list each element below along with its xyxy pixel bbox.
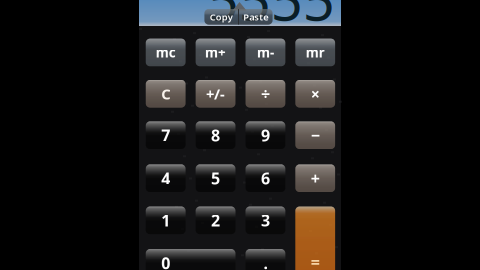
staticText: 2 [211, 210, 220, 231]
staticText: Copy [210, 11, 233, 23]
button[interactable]: 0 [146, 249, 235, 270]
button[interactable]: Equals [295, 207, 335, 270]
staticText: = [311, 251, 320, 270]
staticText: 9 [261, 125, 270, 146]
button[interactable]: − [295, 121, 335, 149]
staticText: 8 [211, 125, 220, 146]
button[interactable]: m+ [196, 39, 235, 66]
staticText: + [311, 168, 320, 189]
staticText: 5555 [207, 0, 335, 36]
button[interactable]: + [295, 164, 335, 192]
button[interactable]: mc [146, 39, 185, 66]
staticText: 4 [161, 168, 170, 189]
button[interactable]: Paste [239, 9, 272, 24]
button[interactable]: 6 [246, 164, 285, 192]
button[interactable]: 1 [146, 207, 185, 234]
button[interactable]: +/- [196, 80, 235, 107]
button[interactable]: . [246, 249, 285, 270]
staticText: 6 [261, 168, 270, 189]
button[interactable]: ÷ [246, 80, 285, 107]
button[interactable]: mr [295, 39, 335, 66]
button[interactable]: 4 [146, 164, 185, 192]
staticText: mr [306, 44, 325, 61]
button[interactable]: Copy [204, 9, 238, 24]
staticText: . [263, 252, 267, 270]
staticText: 3 [261, 210, 270, 231]
staticText: − [311, 125, 320, 146]
staticText: 7 [161, 125, 170, 146]
staticText: × [311, 83, 320, 104]
staticText: 0 [161, 252, 170, 270]
button[interactable]: C [146, 80, 185, 107]
staticText: Paste [243, 11, 268, 23]
button[interactable]: 3 [246, 207, 285, 234]
staticText: 5 [211, 168, 220, 189]
staticText: m- [257, 44, 274, 61]
staticText: m+ [205, 44, 226, 61]
staticText: +/- [206, 84, 225, 103]
button[interactable]: 5 [196, 164, 235, 192]
button[interactable]: m- [246, 39, 285, 66]
button[interactable]: 9 [246, 121, 285, 149]
staticText: C [161, 84, 170, 103]
staticText: 1 [161, 210, 170, 231]
button[interactable]: 7 [146, 121, 185, 149]
button[interactable]: 2 [196, 207, 235, 234]
button[interactable]: 8 [196, 121, 235, 149]
staticText: mc [156, 44, 176, 61]
staticText: ÷ [261, 83, 270, 104]
button[interactable]: × [295, 80, 335, 107]
